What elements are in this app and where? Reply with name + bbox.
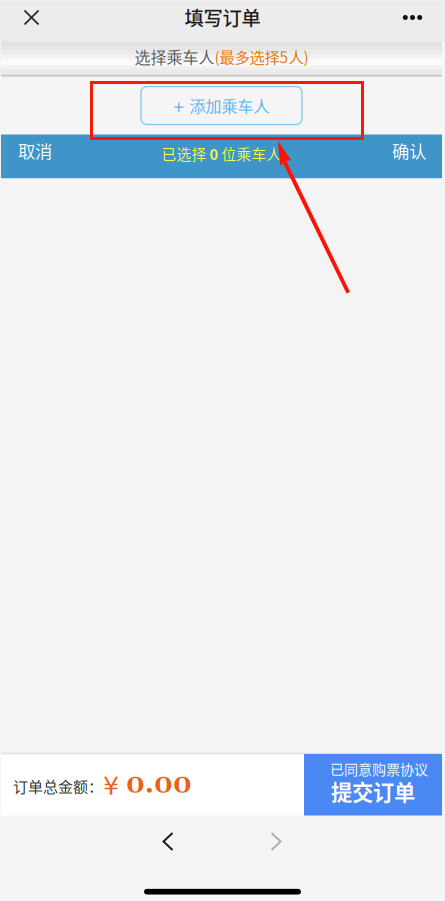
staticText: 提交订单 [331, 776, 415, 807]
button[interactable]: Forward [254, 819, 298, 863]
button[interactable]: 确认 [364, 134, 426, 178]
button[interactable]: More options [389, 0, 436, 34]
staticText: 已同意购票协议 [330, 758, 428, 779]
button[interactable]: 取消 [18, 134, 80, 178]
staticText: 选择乘车人 [134, 45, 214, 68]
button[interactable]: 已同意购票协议 [304, 754, 442, 816]
staticText: 位乘车人 [218, 143, 281, 164]
staticText: 添加乘车人 [189, 94, 269, 117]
staticText: (最多选择5人) [214, 45, 308, 68]
button[interactable]: + [141, 86, 302, 124]
button[interactable]: Close [8, 0, 55, 34]
staticText: 确认 [392, 138, 426, 163]
staticText: 取消 [18, 138, 52, 163]
staticText: 订单总金额： [13, 775, 103, 797]
staticText: ¥ [103, 771, 119, 801]
staticText: 已选择 [161, 143, 209, 164]
button[interactable]: Back [146, 819, 190, 863]
staticText: 填写订单 [184, 3, 260, 31]
staticText: 0.00 [119, 768, 192, 802]
staticText: + [173, 92, 183, 119]
staticText: 0 [209, 143, 218, 164]
